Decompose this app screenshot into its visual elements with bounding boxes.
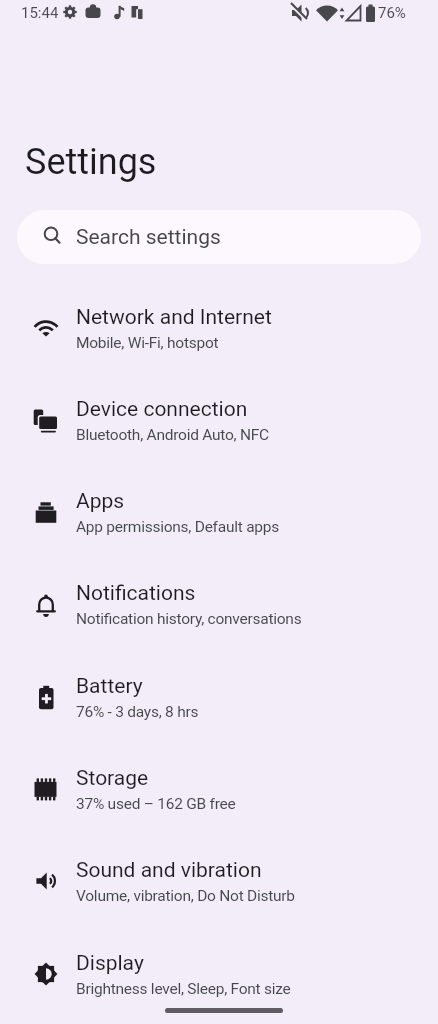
button[interactable]: Device connection [0,374,438,466]
staticText: Sound and vibration [76,858,262,883]
staticText: Mobile, Wi-Fi, hotspot [76,334,219,352]
staticText: Notification history, conversations [76,610,302,628]
staticText: 76% - 3 days, 8 hrs [76,703,199,721]
staticText: Device connection [76,397,248,422]
button[interactable]: Storage [0,743,438,835]
staticText: Apps [76,489,125,514]
staticText: Notifications [76,581,196,606]
staticText: 15:44 [21,4,59,22]
staticText: App permissions, Default apps [76,518,279,536]
button[interactable]: Display [0,928,438,1020]
button[interactable]: Notifications [0,558,438,650]
staticText: Bluetooth, Android Auto, NFC [76,426,269,444]
staticText: 76% [378,4,406,22]
staticText: Settings [25,141,157,183]
staticText: Battery [76,674,143,699]
staticText: Storage [76,766,149,791]
button[interactable]: Sound and vibration [0,835,438,927]
staticText: Brightness level, Sleep, Font size [76,980,291,998]
button[interactable]: Search settings [17,210,421,264]
staticText: Volume, vibration, Do Not Disturb [76,887,295,905]
button[interactable]: Network and Internet [0,282,438,374]
staticText: Search settings [76,225,221,250]
staticText: Network and Internet [76,305,272,330]
staticText: 37% used – 162 GB free [76,795,236,813]
button[interactable]: Apps [0,466,438,558]
staticText: Display [76,951,144,976]
button[interactable]: Battery [0,651,438,743]
